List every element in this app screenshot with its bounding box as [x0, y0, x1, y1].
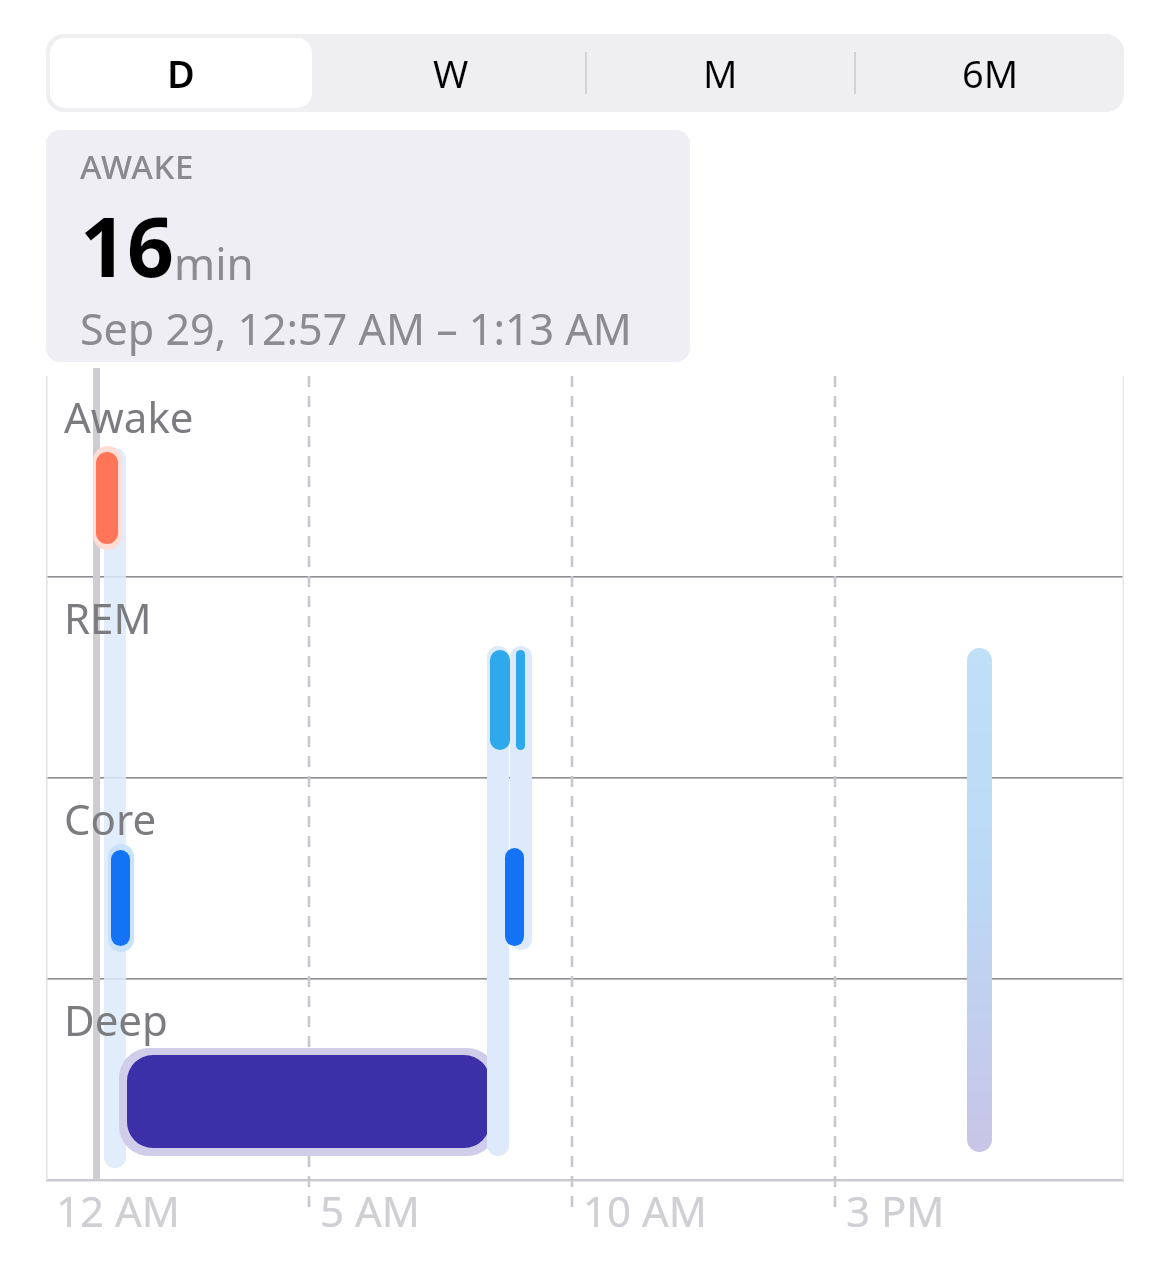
- staticText: D: [167, 47, 195, 99]
- staticText: W: [433, 47, 469, 99]
- staticText: 12 AM: [56, 1182, 180, 1239]
- staticText: Awake: [64, 388, 194, 445]
- staticText: 10 AM: [583, 1182, 707, 1239]
- staticText: Sep 29, 12:57 AM – 1:13 AM: [80, 299, 632, 358]
- staticText: min: [174, 233, 254, 293]
- button[interactable]: AWAKE: [46, 130, 690, 362]
- staticText: 5 AM: [320, 1182, 420, 1239]
- button[interactable]: D: [46, 34, 316, 112]
- staticText: 16: [80, 189, 174, 301]
- staticText: AWAKE: [80, 144, 194, 189]
- staticText: 6M: [962, 47, 1019, 99]
- staticText: Core: [64, 790, 157, 847]
- button[interactable]: W: [316, 34, 586, 112]
- staticText: M: [703, 47, 738, 99]
- staticText: Deep: [64, 991, 168, 1048]
- button[interactable]: 6M: [855, 34, 1124, 112]
- staticText: 3 PM: [846, 1182, 945, 1239]
- staticText: REM: [64, 589, 152, 646]
- button[interactable]: M: [585, 34, 855, 112]
